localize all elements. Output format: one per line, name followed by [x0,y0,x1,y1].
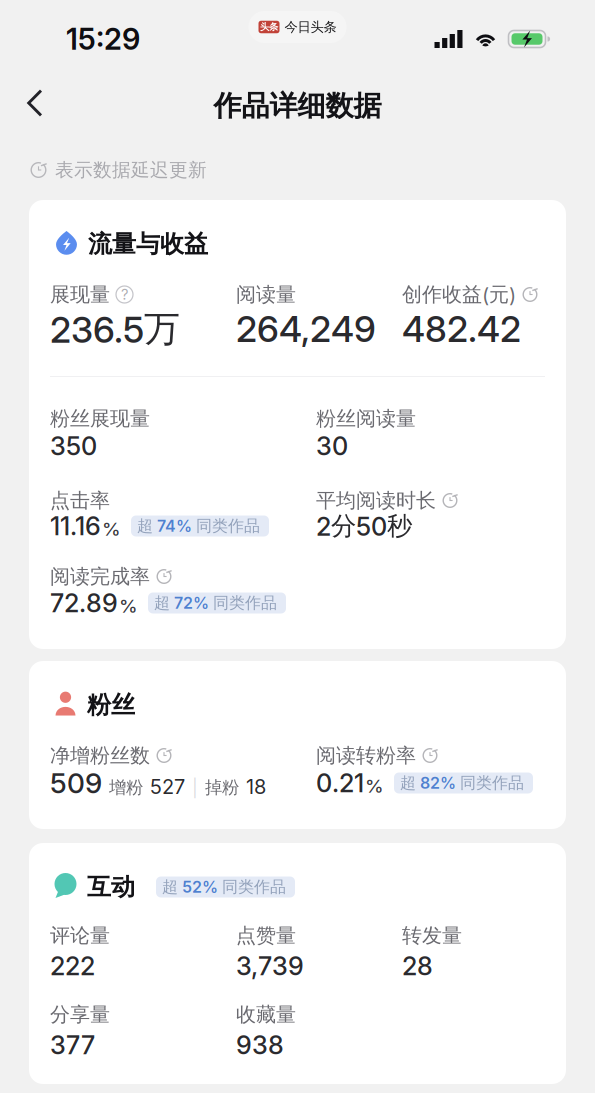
staticText: 527 [150,777,185,796]
staticText: 超 [162,880,178,894]
staticText: 509 [50,770,102,796]
staticText: 粉丝阅读量 [316,409,416,428]
staticText: 头条 [260,23,278,31]
staticText: 同类作品 [213,596,277,610]
staticText: 增粉 [109,779,143,796]
button[interactable]: Back [0,80,61,132]
staticText: 掉粉 [205,779,239,796]
staticText: 今日头条 [284,21,336,33]
staticText: 482.42 [402,312,521,345]
staticText: 阅读转粉率 [316,746,416,765]
staticText: 2分50秒 [316,514,412,538]
staticText: 同类作品 [222,880,286,894]
staticText: 收藏量 [236,1005,296,1024]
staticText: 222 [50,954,95,978]
staticText: 18 [246,777,266,796]
staticText: 350 [50,434,97,458]
staticText: 264,249 [236,312,376,345]
staticText: 72.89 [50,591,118,615]
staticText: 同类作品 [460,776,524,790]
staticText: 流量与收益 [88,232,208,256]
staticText: 点赞量 [236,926,296,945]
staticText: 同类作品 [196,519,260,533]
staticText: 阅读完成率 [50,567,150,586]
staticText: % [365,777,384,795]
staticText: 分享量 [50,1005,110,1024]
staticText: 超 [400,776,416,790]
staticText: 超 [154,596,170,610]
staticText: 74% [157,519,192,533]
staticText: 互动 [87,875,135,899]
staticText: 超 [137,519,153,533]
staticText: 平均阅读时长 [316,491,436,510]
staticText: 点击率 [50,491,110,510]
staticText: 表示数据延迟更新 [55,161,207,179]
staticText: 377 [50,1033,95,1057]
staticText: 创作收益(元) [402,285,516,304]
staticText: 阅读量 [236,285,296,304]
staticText: 15:29 [66,25,140,53]
staticText: 净增粉丝数 [50,746,150,765]
staticText: 作品详细数据 [213,92,381,120]
staticText: 粉丝 [87,693,135,717]
staticText: 82% [420,776,456,790]
staticText: 236.5万 [50,312,180,346]
staticText: % [119,597,138,615]
staticText: 3,739 [236,954,304,978]
staticText: 评论量 [50,926,110,945]
staticText: 展现量 [50,285,110,304]
staticText: ? [121,288,128,301]
staticText: 72% [174,596,209,610]
staticText: 28 [402,954,433,978]
staticText: 30 [316,434,348,458]
staticText: 粉丝展现量 [50,409,150,428]
staticText: 0.21 [316,771,364,795]
staticText: 转发量 [402,926,462,945]
staticText: | [192,780,198,796]
staticText: 11.16 [50,514,101,538]
staticText: % [102,520,121,538]
staticText: 938 [236,1033,284,1057]
staticText: 52% [182,880,218,894]
